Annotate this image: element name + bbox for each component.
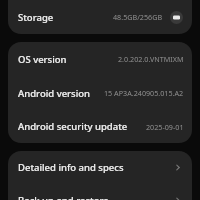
button[interactable]: Storage [170,11,183,24]
button[interactable]: Android security update [8,110,192,143]
staticText: 48.5GB/256GB [113,12,163,22]
staticText: Android version [18,87,91,100]
staticText: Back up and restore [18,194,109,200]
staticText: Android security update [18,120,128,133]
staticText: Detailed info and specs [18,161,124,174]
other: Open [173,163,182,172]
button[interactable]: OS version [8,42,192,76]
button[interactable]: Detailed info and specs [8,151,192,184]
other: Open [173,196,182,200]
staticText: Storage [18,11,54,24]
button[interactable]: Back up and restore [8,184,192,200]
staticText: 15 AP3A.240905.015.A2 [104,88,184,98]
button[interactable]: Storage [8,0,192,34]
staticText: 2025-09-01 [146,122,184,132]
staticText: 2.0.202.0.VNTMIXM [118,54,184,64]
button[interactable]: Android version [8,76,192,110]
staticText: OS version [18,53,67,66]
